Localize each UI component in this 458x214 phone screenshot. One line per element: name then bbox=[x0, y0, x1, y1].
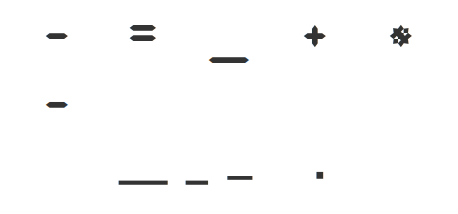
staticText: — – − · bbox=[116, 140, 341, 214]
staticText: - = _ + * ~ bbox=[35, 0, 422, 138]
